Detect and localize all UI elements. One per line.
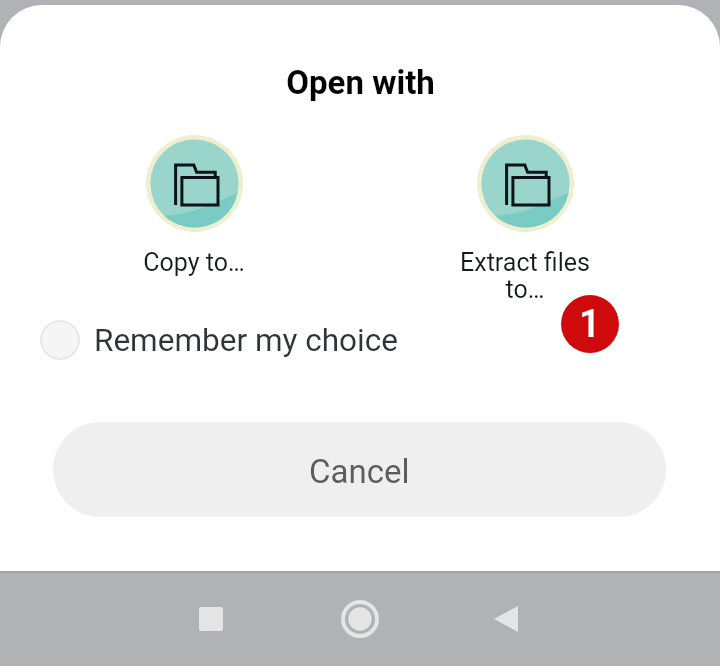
button[interactable]: Extract files to… <box>405 135 645 304</box>
staticText: Copy to… <box>143 248 245 277</box>
button[interactable]: 1 unread notification <box>561 295 619 353</box>
button[interactable]: Copy to… <box>74 135 314 277</box>
button[interactable]: Back <box>470 583 541 654</box>
staticText: Open with <box>286 63 435 102</box>
staticText: Remember my choice <box>94 322 398 359</box>
staticText: 1 <box>579 302 601 347</box>
staticText: Extract files to… <box>453 248 597 304</box>
button[interactable]: Cancel <box>53 422 666 517</box>
button[interactable]: Recent apps <box>175 583 246 654</box>
staticText: Cancel <box>309 452 410 491</box>
button[interactable]: Home <box>324 583 395 654</box>
button[interactable]: Remember my choice <box>0 315 720 365</box>
